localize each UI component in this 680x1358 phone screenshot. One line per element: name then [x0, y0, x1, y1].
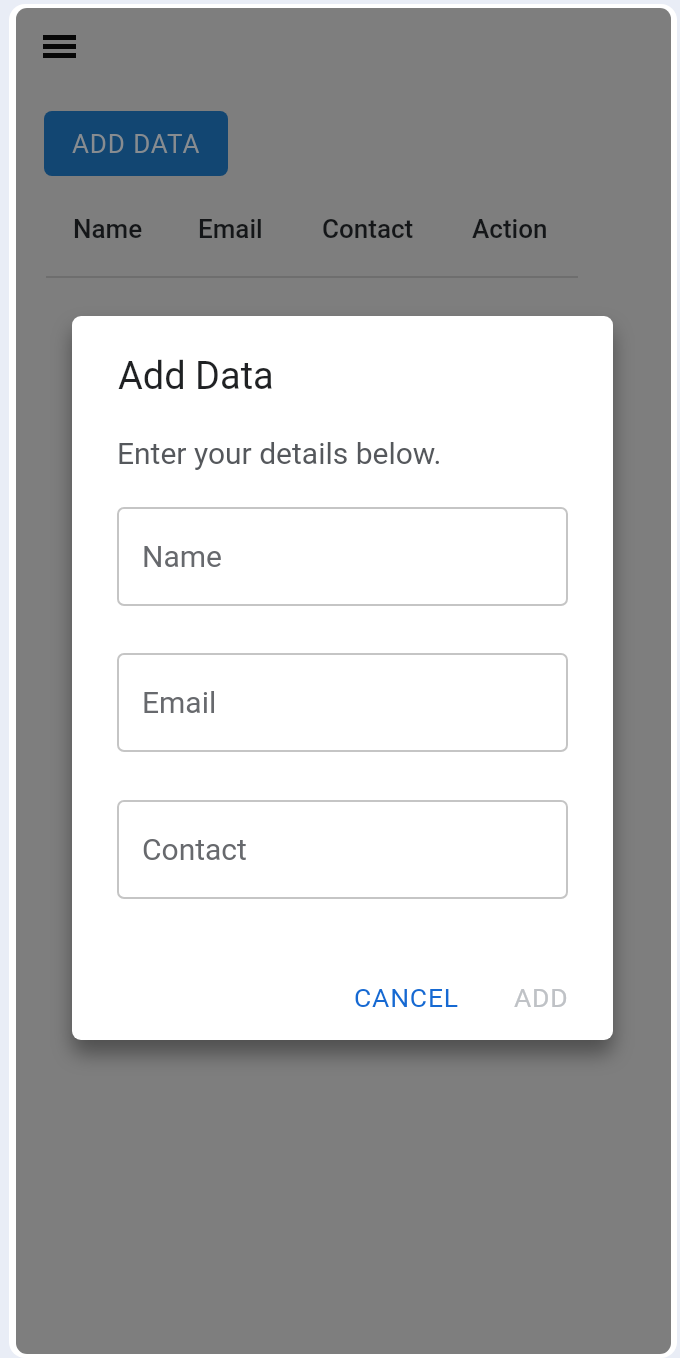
staticText: Name	[142, 539, 222, 574]
staticText: Email	[142, 685, 217, 720]
staticText: Contact	[322, 214, 414, 244]
staticText: Contact	[142, 832, 247, 867]
button[interactable]	[43, 35, 76, 58]
button[interactable]: ADD	[500, 970, 583, 1025]
staticText: Action	[472, 214, 548, 244]
staticText: ADD	[514, 982, 569, 1013]
button[interactable]: Name	[117, 507, 568, 606]
button[interactable]: ADD DATA	[44, 111, 228, 176]
staticText: Name	[73, 214, 143, 244]
button[interactable]: CANCEL	[340, 970, 473, 1025]
staticText: Enter your details below.	[117, 436, 442, 471]
staticText: CANCEL	[354, 982, 459, 1013]
staticText: Email	[198, 214, 263, 244]
button[interactable]: Contact	[117, 800, 568, 899]
button[interactable]: Email	[117, 653, 568, 752]
staticText: ADD DATA	[72, 129, 201, 159]
staticText: Add Data	[118, 354, 274, 399]
